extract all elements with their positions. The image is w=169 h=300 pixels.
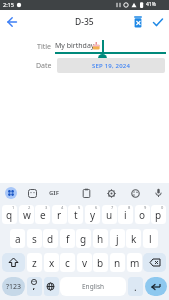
staticText: SEP 19, 2024	[92, 62, 131, 70]
button[interactable]: l	[143, 229, 158, 248]
button[interactable]: v	[77, 253, 92, 272]
button[interactable]: English	[60, 277, 126, 296]
button[interactable]: x	[44, 253, 59, 272]
staticText: English	[82, 282, 105, 291]
staticText: j	[116, 232, 119, 246]
button[interactable]	[5, 187, 17, 199]
staticText: p	[155, 208, 162, 222]
staticText: s	[32, 232, 37, 246]
staticText: h	[97, 232, 104, 246]
button[interactable]	[130, 14, 146, 30]
staticText: n	[114, 256, 121, 270]
staticText: d	[47, 232, 54, 246]
button[interactable]: d	[43, 229, 58, 248]
button[interactable]: c	[60, 253, 75, 272]
staticText: My birthday	[55, 41, 95, 51]
staticText: g	[80, 232, 87, 246]
button[interactable]: SEP 19, 2024	[57, 58, 165, 73]
staticText: .	[134, 280, 137, 294]
button[interactable]: t	[68, 205, 83, 224]
staticText: f	[66, 232, 70, 246]
staticText: ?123	[6, 282, 22, 292]
staticText: Date	[36, 61, 52, 71]
button[interactable]	[145, 277, 167, 296]
staticText: l	[149, 232, 152, 246]
staticText: w	[23, 208, 31, 222]
button[interactable]: u	[102, 205, 117, 224]
button[interactable]: y	[85, 205, 100, 224]
staticText: 2:15	[3, 1, 14, 8]
staticText: e	[40, 208, 46, 222]
button[interactable]: ?123	[2, 277, 25, 296]
button[interactable]: w	[19, 205, 34, 224]
staticText: v	[82, 256, 88, 270]
staticText: 2	[28, 205, 31, 210]
button[interactable]: f	[60, 229, 75, 248]
staticText: 5	[78, 205, 81, 210]
staticText: u	[106, 208, 113, 222]
button[interactable]: i	[118, 205, 133, 224]
button[interactable]: h	[93, 229, 108, 248]
staticText: 3	[45, 205, 48, 210]
staticText: y	[90, 208, 96, 222]
staticText: 4	[61, 205, 64, 210]
button[interactable]	[82, 189, 91, 198]
button[interactable]: o	[135, 205, 150, 224]
button[interactable]: e	[35, 205, 50, 224]
button[interactable]	[131, 189, 140, 198]
staticText: 6	[95, 205, 98, 210]
staticText: x	[49, 256, 55, 270]
staticText: 8	[128, 205, 131, 210]
staticText: z	[32, 256, 37, 270]
staticText: q	[6, 208, 13, 222]
button[interactable]	[4, 14, 20, 30]
button[interactable]: j	[110, 229, 125, 248]
staticText: 1	[12, 205, 15, 210]
staticText: 9	[144, 205, 147, 210]
staticText: t	[74, 208, 78, 222]
staticText: GIF	[49, 189, 59, 197]
button[interactable]: k	[126, 229, 141, 248]
button[interactable]	[154, 188, 163, 198]
staticText: k	[131, 232, 137, 246]
staticText: 0	[161, 205, 164, 210]
button[interactable]	[2, 253, 25, 272]
button[interactable]: q	[2, 205, 17, 224]
staticText: a	[15, 232, 21, 246]
button[interactable]: b	[93, 253, 108, 272]
button[interactable]	[150, 14, 166, 30]
staticText: m	[130, 256, 140, 270]
staticText: c	[65, 256, 70, 270]
staticText: r	[57, 208, 62, 222]
button[interactable]: z	[27, 253, 42, 272]
button[interactable]	[27, 277, 42, 296]
button[interactable]: r	[52, 205, 67, 224]
button[interactable]: m	[127, 253, 142, 272]
staticText: b	[97, 256, 104, 270]
button[interactable]	[107, 189, 116, 198]
staticText: 7	[111, 205, 114, 210]
button[interactable]: p	[151, 205, 166, 224]
button[interactable]: n	[110, 253, 125, 272]
staticText: o	[139, 208, 146, 222]
button[interactable]	[143, 253, 166, 272]
button[interactable]: s	[27, 229, 42, 248]
button[interactable]: a	[10, 229, 25, 248]
button[interactable]: g	[76, 229, 91, 248]
button[interactable]	[44, 277, 59, 296]
staticText: D-35	[75, 16, 94, 28]
button[interactable]	[28, 189, 37, 198]
staticText: 41%	[146, 1, 156, 8]
staticText: i	[124, 208, 127, 222]
staticText: Title	[37, 42, 51, 52]
button[interactable]: .	[128, 277, 143, 296]
